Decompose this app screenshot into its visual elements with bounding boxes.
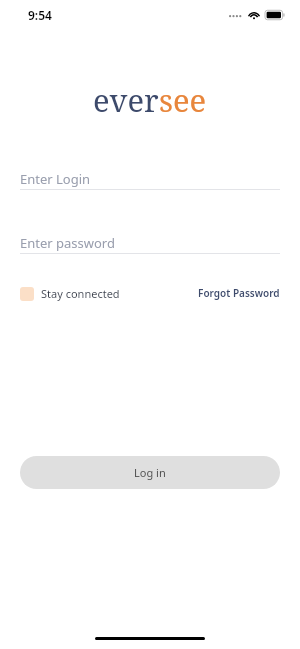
other: Wi-Fi xyxy=(248,10,260,20)
staticText: see xyxy=(159,79,207,115)
button[interactable]: Enter Login xyxy=(20,168,280,190)
staticText: ever xyxy=(93,79,159,115)
staticText: Log in xyxy=(134,465,166,480)
button[interactable]: Log in xyxy=(20,456,280,489)
staticText: Forgot Password xyxy=(198,286,280,300)
other: Battery xyxy=(265,10,285,20)
staticText: Enter Login xyxy=(20,170,91,188)
staticText: Stay connected xyxy=(41,286,120,301)
button[interactable]: Enter password xyxy=(20,232,280,254)
other: Cellular signal xyxy=(229,10,243,20)
staticText: Enter password xyxy=(20,234,115,252)
button[interactable]: Stay connected xyxy=(20,286,124,301)
staticText: 9:54 xyxy=(28,7,52,23)
button[interactable]: Forgot Password xyxy=(198,286,280,300)
